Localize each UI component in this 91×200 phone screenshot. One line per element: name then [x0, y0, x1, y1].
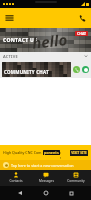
- staticText: CONTACT US: [3, 37, 38, 44]
- button[interactable]: Back: [15, 188, 25, 198]
- button[interactable]: Recent apps: [66, 188, 76, 198]
- button[interactable]: Messages: [31, 170, 61, 186]
- button[interactable]: Open navigation menu: [2, 11, 16, 25]
- staticText: ACTIVE: [3, 54, 18, 59]
- staticText: for all: [60, 145, 61, 160]
- staticText: High Quality CNC Com: [3, 150, 42, 155]
- staticText: VISIT SITE: [71, 151, 87, 155]
- button[interactable]: Community: [61, 170, 91, 186]
- button[interactable]: CHAT: [75, 31, 88, 36]
- button[interactable]: Call: [75, 11, 89, 25]
- staticText: ponents: [44, 150, 59, 155]
- staticText: Community: [67, 179, 85, 183]
- button[interactable]: Home: [41, 188, 51, 198]
- button[interactable]: COMMUNITY CHAT: [2, 62, 71, 77]
- staticText: Messages: [39, 179, 54, 183]
- button[interactable]: Open chat: [82, 66, 89, 73]
- staticText: Contacts: [9, 179, 23, 183]
- button[interactable]: ACTIVE: [0, 52, 91, 60]
- button[interactable]: Call on WhatsApp: [73, 66, 80, 73]
- button[interactable]: VISIT SITE: [70, 150, 88, 156]
- staticText: CHAT: [77, 31, 87, 36]
- button[interactable]: Tap here to start a new conversation: [0, 160, 91, 170]
- button[interactable]: Contacts: [0, 170, 31, 186]
- staticText: hello: [31, 29, 69, 53]
- staticText: COMMUNITY CHAT: [4, 69, 49, 75]
- staticText: Tap here to start a new conversation: [11, 163, 74, 168]
